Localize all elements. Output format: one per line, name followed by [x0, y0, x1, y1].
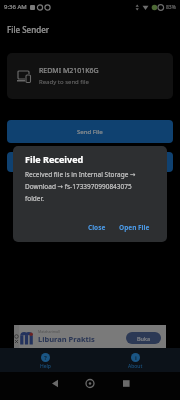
staticText: Close — [88, 223, 106, 232]
staticText: Open File — [119, 223, 150, 232]
staticText: Receive File — [73, 158, 107, 166]
button[interactable]: Mataharimall — [14, 325, 166, 348]
staticText: ? — [44, 354, 47, 362]
button[interactable]: Buka — [126, 332, 161, 344]
staticText: Download → fs-1733970990843075 — [25, 182, 132, 191]
staticText: File Received — [25, 153, 84, 165]
staticText: File Sender — [7, 24, 50, 35]
staticText: Send File — [77, 128, 103, 136]
button[interactable]: REDMI M2101K6G — [7, 53, 173, 99]
staticText: i — [135, 354, 137, 362]
staticText: Buka — [137, 335, 150, 342]
staticText: folder. — [25, 194, 44, 203]
staticText: Mataharimall — [38, 329, 60, 334]
staticText: 9:36 AM — [4, 3, 27, 11]
button[interactable]: Close — [88, 223, 106, 232]
button[interactable]: ? — [0, 348, 90, 372]
button[interactable]: Send File — [7, 120, 173, 143]
staticText: REDMI M2101K6G — [39, 66, 99, 76]
button[interactable]: Receive File — [7, 152, 173, 172]
button[interactable]: Open File — [119, 223, 150, 232]
staticText: Liburan Praktis — [38, 334, 95, 344]
staticText: Help — [40, 363, 51, 370]
staticText: 83% — [166, 4, 176, 11]
button[interactable]: i — [90, 348, 180, 372]
staticText: About — [128, 363, 143, 370]
staticText: Ready to send file — [39, 78, 89, 86]
staticText: Received file is in Internal Storage → — [25, 170, 136, 179]
